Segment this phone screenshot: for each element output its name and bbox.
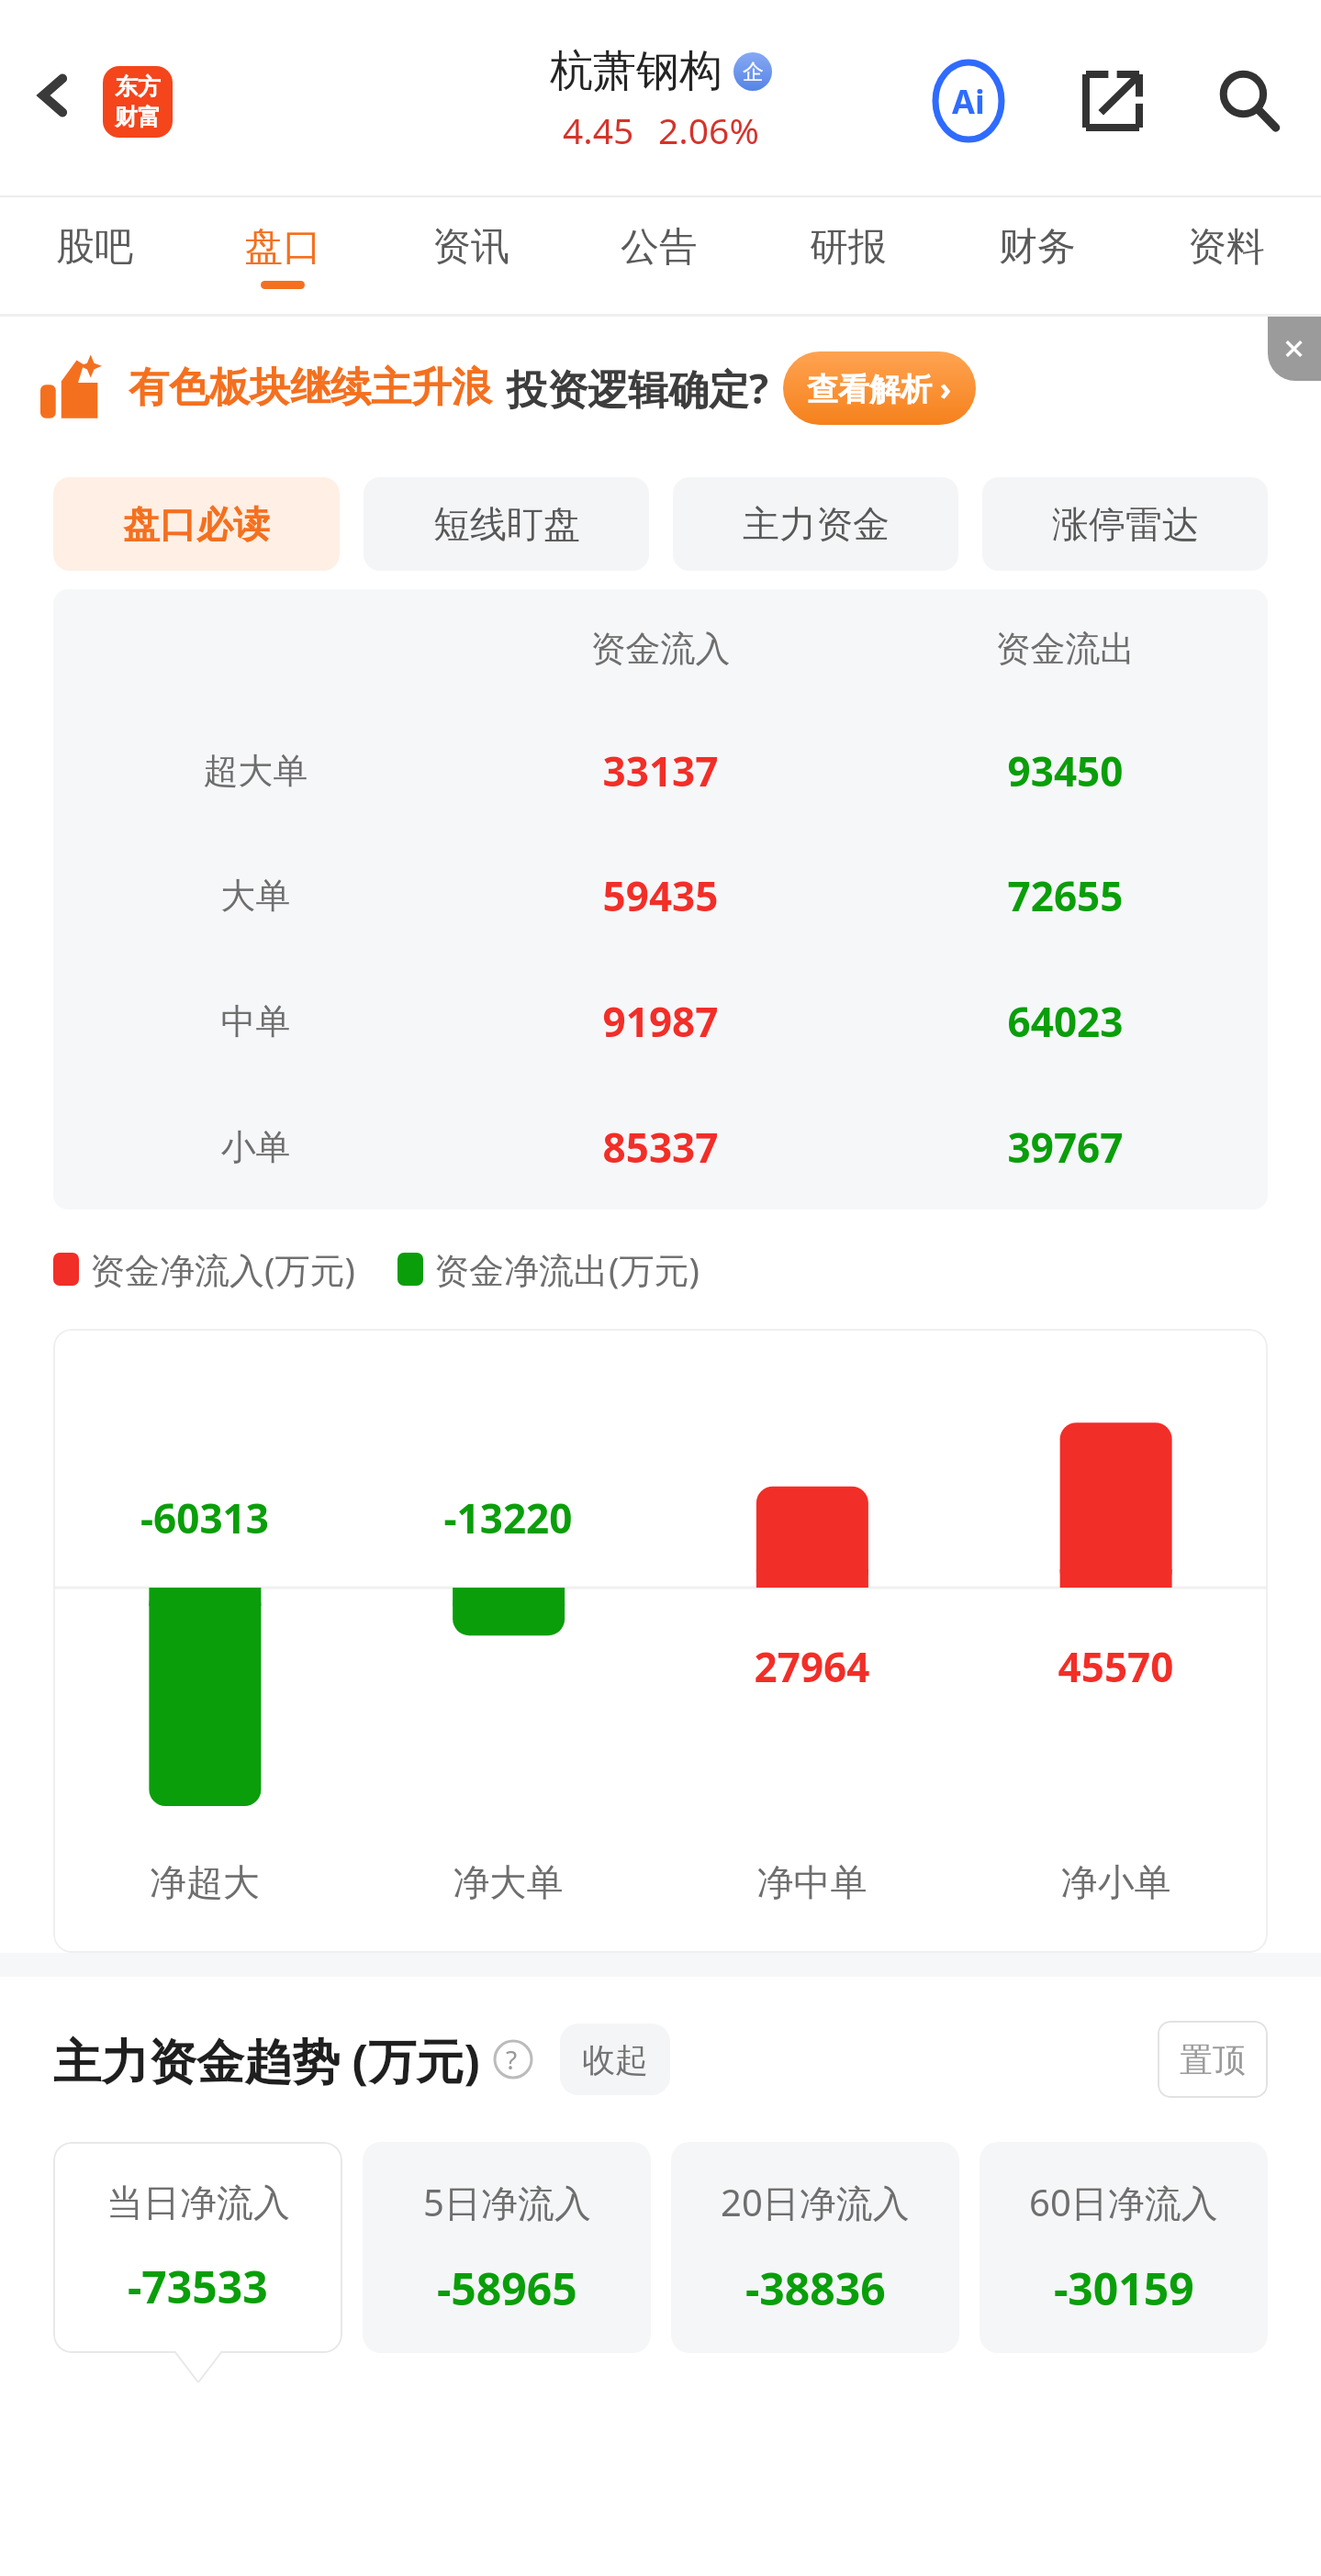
- staticText: 60日净流入: [1029, 2177, 1218, 2227]
- staticText: 置顶: [1180, 2039, 1246, 2080]
- staticText: ✕: [1282, 333, 1306, 365]
- staticText: 收起: [582, 2039, 648, 2080]
- staticText: 33137: [458, 743, 863, 798]
- staticText: 主力资金趋势 (万元): [53, 2027, 480, 2092]
- staticText: 财务: [999, 223, 1076, 272]
- button[interactable]: 盘口必读: [53, 477, 340, 571]
- staticText: 27964: [660, 1639, 964, 1694]
- button[interactable]: 查看解析 ›: [783, 351, 976, 425]
- staticText: 85337: [458, 1120, 863, 1175]
- button[interactable]: 置顶: [1158, 2021, 1268, 2098]
- button[interactable]: Search: [1210, 62, 1287, 139]
- staticText: 投资逻辑确定?: [507, 361, 768, 416]
- staticText: 4.45: [563, 106, 634, 154]
- staticText: 大单: [53, 874, 458, 918]
- button[interactable]: East Money home: [103, 66, 173, 138]
- staticText: 资金净流入(万元): [90, 1245, 355, 1293]
- staticText: 91987: [458, 994, 863, 1049]
- staticText: 39767: [863, 1120, 1268, 1175]
- staticText: 资金流入: [458, 627, 863, 671]
- staticText: 资讯: [432, 223, 509, 272]
- staticText: 5日净流入: [423, 2177, 591, 2227]
- staticText: 净中单: [660, 1859, 964, 1905]
- button[interactable]: 当日净流入: [53, 2142, 342, 2353]
- staticText: ?: [506, 2042, 518, 2077]
- staticText: 净大单: [356, 1859, 660, 1905]
- staticText: 主力资金: [743, 501, 890, 547]
- staticText: 财富: [115, 103, 161, 131]
- staticText: 盘口必读: [123, 501, 270, 547]
- staticText: -58965: [437, 2258, 577, 2318]
- staticText: Ai: [952, 79, 985, 124]
- staticText: 净小单: [964, 1859, 1268, 1905]
- staticText: -30159: [1054, 2258, 1194, 2318]
- button[interactable]: 盘口: [188, 197, 376, 314]
- staticText: 企: [743, 59, 764, 85]
- button[interactable]: AI assistant: [930, 62, 1007, 139]
- button[interactable]: 主力资金: [673, 477, 958, 571]
- staticText: 研报: [810, 223, 887, 272]
- staticText: 资料: [1188, 223, 1265, 272]
- button[interactable]: 研报: [754, 197, 943, 314]
- staticText: 资金流出: [863, 627, 1268, 671]
- button[interactable]: 有色板块继续主升浪: [0, 317, 1321, 459]
- staticText: 小单: [53, 1125, 458, 1169]
- staticText: 20日净流入: [721, 2177, 910, 2227]
- staticText: 股吧: [56, 223, 133, 272]
- staticText: -13220: [356, 1490, 660, 1545]
- staticText: 查看解析 ›: [807, 367, 952, 409]
- button[interactable]: 涨停雷达: [982, 477, 1268, 571]
- staticText: 净超大: [53, 1859, 356, 1905]
- staticText: 超大单: [53, 749, 458, 793]
- staticText: 64023: [863, 994, 1268, 1049]
- staticText: 短线盯盘: [433, 501, 580, 547]
- staticText: 45570: [964, 1639, 1268, 1694]
- staticText: -73533: [128, 2257, 268, 2316]
- button[interactable]: Close ad: [1268, 317, 1321, 381]
- staticText: 杭萧钢构: [550, 44, 722, 98]
- button[interactable]: 60日净流入: [980, 2142, 1268, 2353]
- staticText: 涨停雷达: [1052, 501, 1199, 547]
- staticText: 93450: [863, 743, 1268, 798]
- staticText: -60313: [53, 1490, 356, 1545]
- button[interactable]: 资讯: [376, 197, 565, 314]
- staticText: 中单: [53, 999, 458, 1043]
- staticText: 有色板块继续主升浪: [129, 362, 492, 413]
- staticText: 公告: [621, 223, 698, 272]
- staticText: 资金净流出(万元): [434, 1245, 700, 1293]
- button[interactable]: 财务: [943, 197, 1132, 314]
- staticText: -38836: [745, 2258, 886, 2318]
- staticText: 2.06%: [658, 106, 759, 154]
- button[interactable]: 5日净流入: [363, 2142, 651, 2353]
- button[interactable]: 资料: [1132, 197, 1321, 314]
- button[interactable]: 20日净流入: [671, 2142, 959, 2353]
- button[interactable]: Share: [1074, 62, 1151, 139]
- staticText: 盘口: [244, 223, 321, 272]
- button[interactable]: 收起: [560, 2024, 670, 2095]
- staticText: 72655: [863, 868, 1268, 923]
- staticText: 东方: [115, 72, 161, 101]
- button[interactable]: 股吧: [0, 197, 188, 314]
- button[interactable]: 短线盯盘: [364, 477, 649, 571]
- staticText: 59435: [458, 868, 863, 923]
- staticText: 当日净流入: [106, 2180, 290, 2225]
- button[interactable]: 公告: [565, 197, 754, 314]
- button[interactable]: Back: [11, 53, 95, 138]
